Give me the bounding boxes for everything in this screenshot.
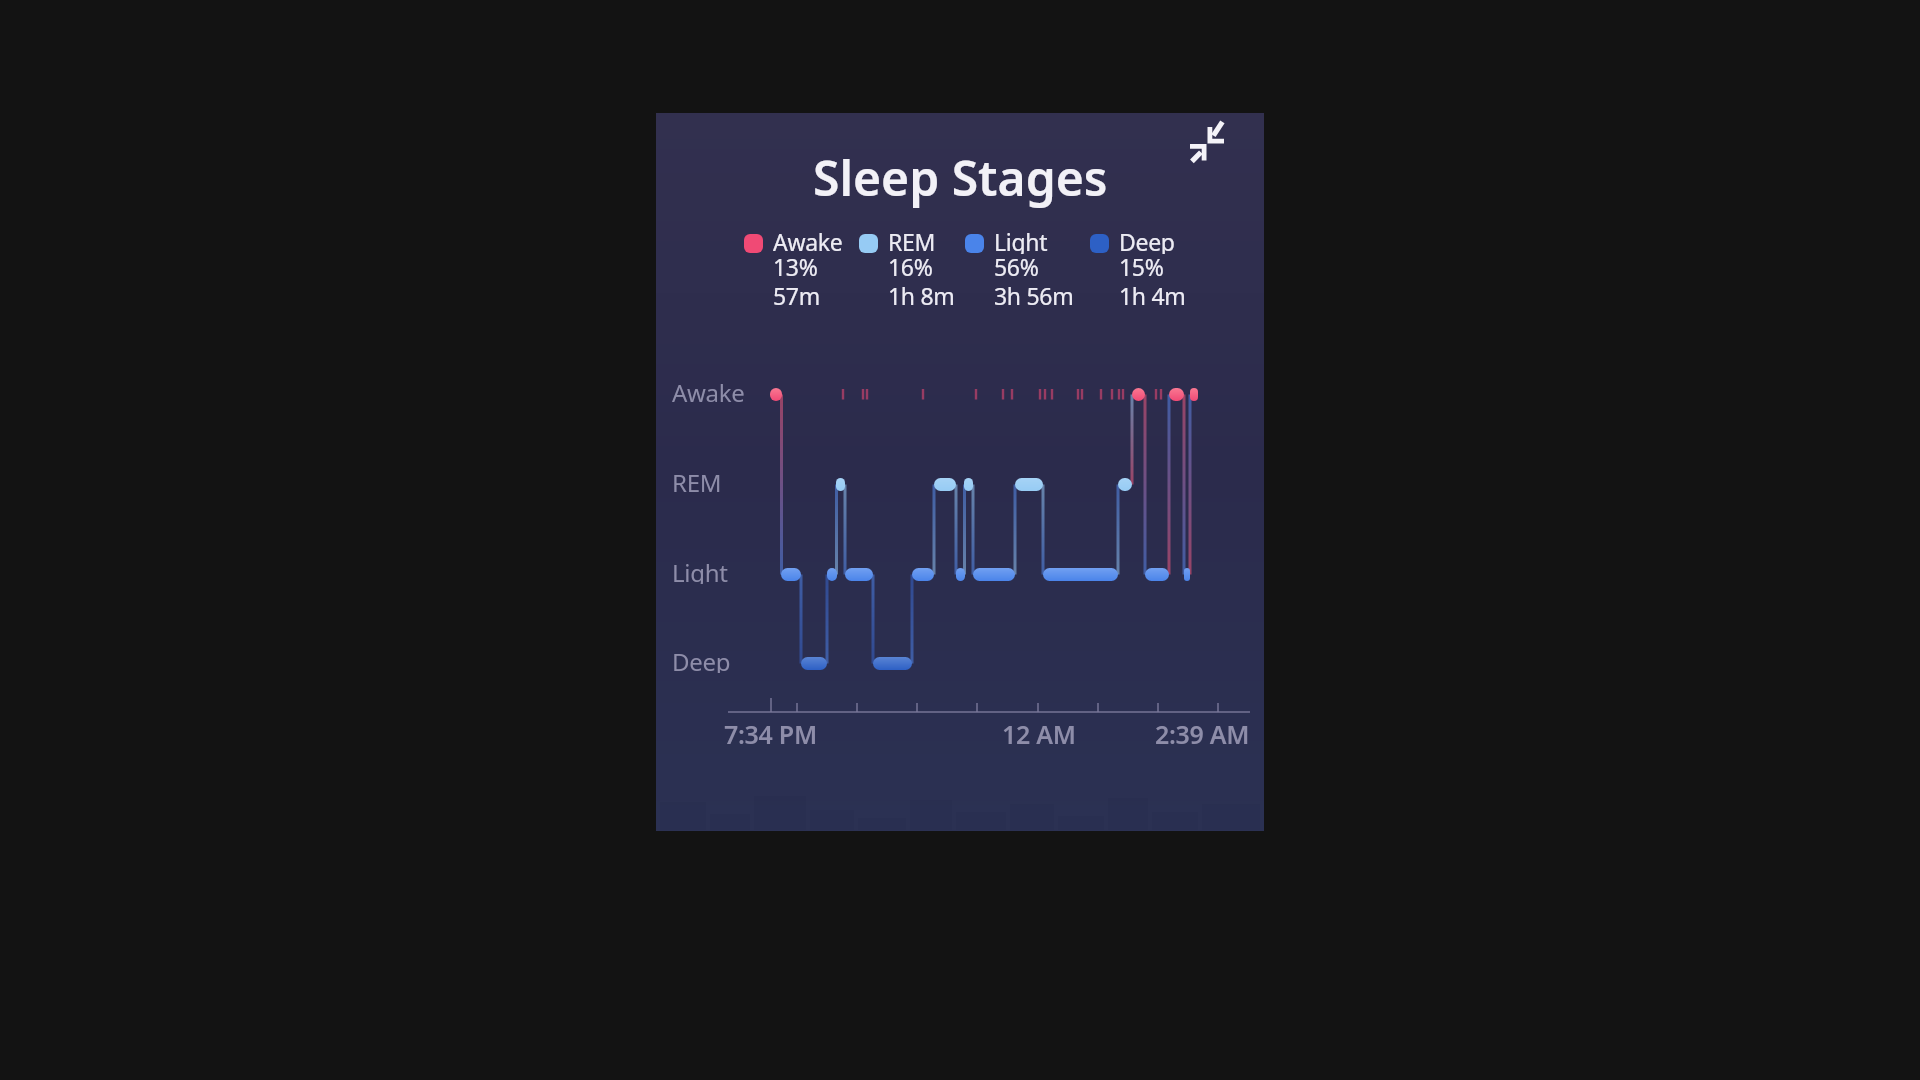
staticText: Light [994,226,1048,254]
staticText: 16% [888,251,933,279]
staticText: 57m [773,280,820,308]
staticText: 56% [994,251,1039,279]
staticText: 3h 56m [994,280,1074,308]
staticText: 1h 8m [888,280,955,308]
staticText: Light [672,556,728,584]
staticText: 15% [1119,251,1164,279]
staticText: REM [672,466,722,494]
staticText: Sleep Stages [813,145,1108,209]
staticText: Awake [672,376,745,404]
staticText: Awake [773,226,843,254]
staticText: 13% [773,251,818,279]
staticText: 7:34 PM [724,717,817,745]
staticText: REM [888,226,936,254]
button[interactable] [1185,117,1229,165]
staticText: 1h 4m [1119,280,1186,308]
staticText: 12 AM [1002,717,1076,745]
staticText: Deep [672,645,731,673]
staticText: 2:39 AM [1155,717,1250,745]
staticText: Deep [1119,226,1175,254]
